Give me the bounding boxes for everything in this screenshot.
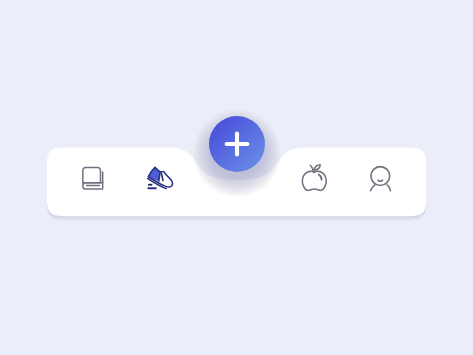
button[interactable]: Library (70, 155, 116, 201)
button[interactable]: Add (209, 116, 265, 172)
button[interactable]: Profile (357, 155, 403, 201)
button[interactable]: Nutrition (291, 155, 337, 201)
button[interactable]: Activity (136, 155, 182, 201)
